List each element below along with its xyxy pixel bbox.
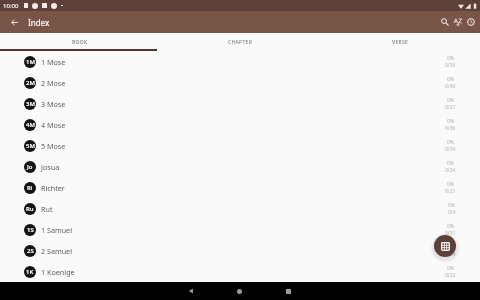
staticText: Josua <box>41 162 60 172</box>
staticText: 0/4 <box>448 209 456 216</box>
button[interactable]: Recent apps <box>264 282 312 300</box>
staticText: 0% <box>447 97 455 104</box>
staticText: 0% <box>448 202 456 209</box>
staticText: Index <box>28 17 50 28</box>
staticText: 4M <box>26 121 35 129</box>
staticText: 0% <box>447 55 455 62</box>
button[interactable]: CHAPTER <box>160 33 320 51</box>
staticText: Rut <box>41 204 53 214</box>
button[interactable]: 1M <box>0 51 480 72</box>
staticText: Jo <box>27 163 33 171</box>
staticText: 0/27 <box>445 104 456 111</box>
staticText: 1S <box>27 226 34 234</box>
staticText: Ru <box>26 205 34 213</box>
button[interactable]: Ru <box>0 198 480 219</box>
button[interactable]: Grid view <box>434 235 456 257</box>
staticText: 10:00 <box>3 2 19 10</box>
staticText: 0/22 <box>445 272 456 279</box>
button[interactable]: 4M <box>0 114 480 135</box>
button[interactable]: History <box>464 11 477 33</box>
button[interactable]: Back <box>0 11 28 33</box>
button[interactable]: 2S <box>0 240 480 261</box>
staticText: 2S <box>27 247 34 255</box>
button[interactable]: 1K <box>0 261 480 282</box>
staticText: 0/24 <box>445 251 456 258</box>
staticText: 5 Mose <box>41 141 66 151</box>
staticText: 0/24 <box>445 167 456 174</box>
staticText: 0/31 <box>445 230 456 237</box>
button[interactable]: Home <box>215 282 263 300</box>
staticText: 2 Mose <box>41 78 66 88</box>
button[interactable]: 2M <box>0 72 480 93</box>
staticText: 0% <box>447 181 455 188</box>
staticText: BOOK <box>72 39 88 46</box>
button[interactable]: 1S <box>0 219 480 240</box>
button[interactable]: VERSE <box>320 33 480 51</box>
staticText: 0% <box>447 223 455 230</box>
staticText: 1 Koenige <box>41 267 75 277</box>
staticText: 1 Mose <box>41 57 66 67</box>
button[interactable]: Back <box>167 282 215 300</box>
staticText: 2 Samuel <box>41 246 73 256</box>
staticText: 4 Mose <box>41 120 66 130</box>
staticText: 0/34 <box>445 146 456 153</box>
staticText: 0% <box>447 118 455 125</box>
staticText: 0/40 <box>445 83 456 90</box>
staticText: VERSE <box>392 39 409 46</box>
staticText: Ri <box>27 184 33 192</box>
button[interactable]: Ri <box>0 177 480 198</box>
staticText: 1M <box>26 58 35 66</box>
staticText: 5M <box>26 142 35 150</box>
staticText: 1K <box>26 268 34 276</box>
button[interactable]: 3M <box>0 93 480 114</box>
staticText: 0% <box>447 160 455 167</box>
button[interactable]: BOOK <box>0 33 160 51</box>
staticText: 0% <box>447 244 455 251</box>
staticText: 2M <box>26 79 35 87</box>
staticText: 1 Samuel <box>41 225 73 235</box>
staticText: 0/50 <box>445 62 456 69</box>
button[interactable]: Search <box>438 11 451 33</box>
button[interactable]: Sort alphabetically <box>451 11 464 33</box>
staticText: 3M <box>26 100 35 108</box>
staticText: 0/21 <box>445 188 456 195</box>
staticText: 0% <box>447 76 455 83</box>
staticText: Richter <box>41 183 65 193</box>
staticText: 0% <box>447 265 455 272</box>
button[interactable]: 5M <box>0 135 480 156</box>
staticText: 0/36 <box>445 125 456 132</box>
staticText: CHAPTER <box>228 39 253 46</box>
staticText: 3 Mose <box>41 99 66 109</box>
button[interactable]: Jo <box>0 156 480 177</box>
staticText: 0% <box>447 139 455 146</box>
